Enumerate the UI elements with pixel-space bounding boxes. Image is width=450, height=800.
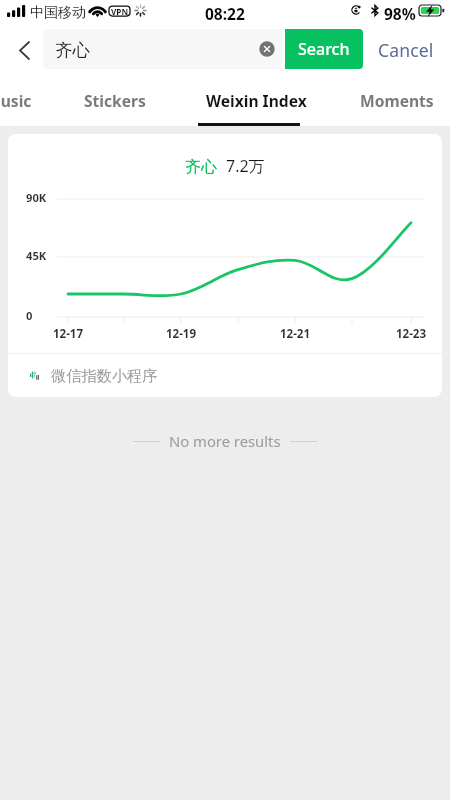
staticText: 12-19 <box>156 326 206 342</box>
staticText: 98% <box>384 3 416 24</box>
button[interactable]: Stickers <box>84 72 150 126</box>
staticText: 微信指数小程序 <box>51 366 158 385</box>
staticText: 90K <box>26 190 47 205</box>
staticText: Cancel <box>378 38 434 62</box>
staticText: No more results <box>169 431 281 451</box>
button[interactable]: Music <box>0 72 36 126</box>
staticText: VPN <box>111 6 129 16</box>
button[interactable]: Back <box>0 26 43 72</box>
staticText: 12-23 <box>386 326 436 342</box>
staticText: 45K <box>26 248 47 263</box>
button[interactable]: Weixin Index <box>206 72 308 126</box>
staticText: 齐心 <box>185 157 217 177</box>
staticText: 08:22 <box>205 3 245 24</box>
staticText: Music <box>0 90 32 111</box>
button[interactable]: 齐心 <box>43 29 282 69</box>
staticText: 12-21 <box>270 326 320 342</box>
staticText: 7.2万 <box>226 155 265 177</box>
staticText: Search <box>298 38 350 60</box>
button[interactable]: 齐心 <box>8 134 442 397</box>
staticText: Stickers <box>84 90 146 111</box>
staticText: Moments <box>360 90 434 111</box>
button[interactable]: Search <box>285 29 363 69</box>
staticText: 中国移动 <box>30 4 86 22</box>
button[interactable]: Cancel <box>363 29 450 69</box>
staticText: 0 <box>26 308 33 323</box>
staticText: Weixin Index <box>206 90 307 111</box>
button[interactable]: Moments <box>360 72 437 126</box>
staticText: 齐心 <box>55 39 90 61</box>
staticText: 12-17 <box>43 326 93 342</box>
button[interactable]: Clear <box>259 41 275 57</box>
